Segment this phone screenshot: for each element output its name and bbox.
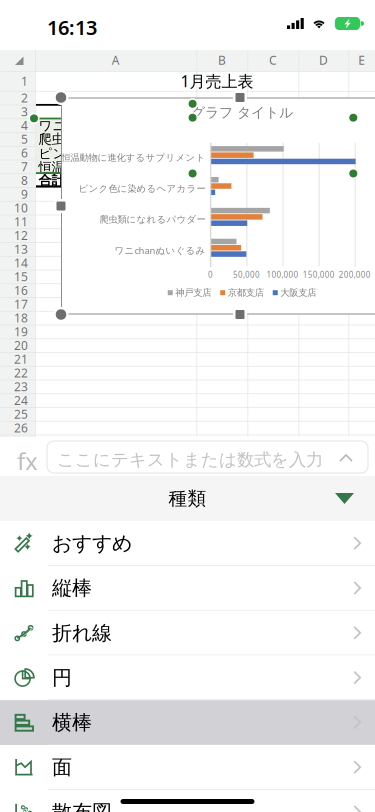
staticText: 大阪支店 (280, 287, 316, 299)
button[interactable]: 横棒 (0, 700, 375, 745)
staticText: 6 (21, 145, 28, 161)
staticText: 散布図 (52, 800, 112, 812)
staticText: 21 (14, 351, 28, 367)
button[interactable]: 円 (0, 655, 375, 700)
staticText: fx (17, 445, 38, 477)
button[interactable]: ここにテキストまたは数式を入力 (47, 441, 368, 473)
staticText: 200,000 (339, 269, 371, 280)
staticText: 横棒 (52, 710, 92, 735)
staticText: 25 (14, 406, 28, 422)
staticText: 折れ線 (52, 621, 112, 645)
staticText: 9 (21, 186, 28, 202)
staticText: 50,000 (233, 269, 260, 280)
staticText: 10 (14, 200, 28, 216)
staticText: 3 (21, 104, 28, 119)
staticText: 爬虫類になれるパウダー (38, 131, 188, 147)
staticText: ワニchanぬいぐるみ (114, 244, 205, 257)
staticText: 150,000 (303, 269, 335, 280)
staticText: 20 (14, 337, 28, 353)
staticText: C (269, 52, 277, 68)
staticText: E (358, 52, 365, 68)
staticText: B (218, 52, 226, 68)
staticText: 合計 (38, 172, 64, 189)
staticText: 22 (14, 365, 28, 381)
staticText: A (112, 52, 120, 68)
staticText: 13 (14, 241, 28, 257)
staticText: 0 (208, 269, 213, 280)
staticText: 神戸支店 (175, 287, 211, 299)
staticText: グラフ タイトル (191, 104, 293, 121)
staticText: 100,000 (267, 269, 299, 280)
staticText: 爬虫類になれるパウダー (99, 214, 205, 225)
button[interactable]: おすすめ (0, 521, 375, 566)
staticText: 恒温動物に進化するサプリメント (61, 152, 205, 164)
staticText: 種類 (168, 487, 206, 510)
staticText: 7 (21, 159, 28, 174)
staticText: 恒温動物に進化するサプリメント (38, 157, 195, 176)
staticText: 縦棒 (52, 576, 92, 600)
staticText: 8 (21, 172, 28, 188)
button[interactable]: 面 (0, 745, 375, 790)
staticText: 11 (14, 214, 28, 229)
staticText: 4 (21, 117, 28, 133)
staticText: 16:13 (47, 14, 97, 41)
staticText: 14 (14, 255, 28, 271)
staticText: 2 (21, 90, 28, 106)
staticText: 面 (52, 755, 72, 780)
staticText: 京都支店 (228, 287, 264, 299)
staticText: 16 (14, 282, 28, 298)
staticText: おすすめ (52, 531, 132, 556)
staticText: 円 (52, 665, 72, 690)
staticText: 18 (14, 310, 28, 326)
staticText: 19 (14, 324, 28, 339)
staticText: ピンク色に染めるヘアカラー (78, 183, 205, 194)
staticText: 24 (14, 392, 28, 408)
staticText: ここにテキストまたは数式を入力 (57, 449, 323, 470)
staticText: 12 (14, 227, 28, 243)
button[interactable]: 折れ線 (0, 611, 375, 655)
staticText: 5 (21, 131, 28, 147)
staticText: 15 (14, 269, 28, 284)
staticText: 26 (14, 420, 28, 436)
staticText: D (319, 52, 328, 68)
button[interactable]: 散布図 (0, 790, 375, 812)
staticText: 1 (21, 73, 28, 89)
button[interactable]: 種類 (0, 476, 375, 521)
staticText: ワニchanぬいぐるみ (38, 116, 165, 134)
button[interactable]: 縦棒 (0, 566, 375, 611)
staticText: 1月売上表 (180, 70, 253, 92)
staticText: ピンク色に染めるヘアカラー (38, 144, 195, 162)
staticText: 23 (14, 379, 28, 394)
staticText: 17 (14, 296, 28, 312)
